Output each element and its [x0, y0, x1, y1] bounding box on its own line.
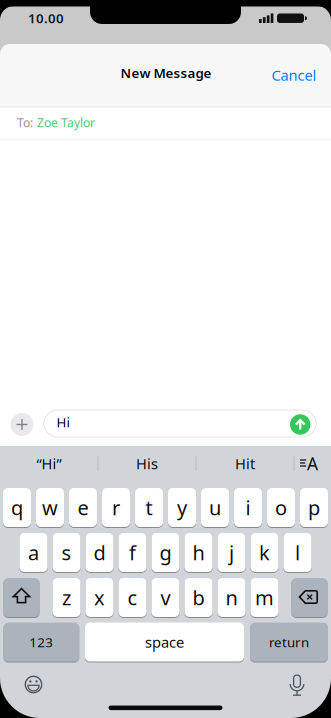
- button[interactable]: t: [135, 488, 163, 527]
- button[interactable]: [291, 578, 327, 617]
- staticText: A: [307, 452, 318, 475]
- button[interactable]: d: [85, 533, 113, 572]
- button[interactable]: [290, 414, 310, 435]
- staticText: v: [160, 584, 170, 611]
- staticText: space: [145, 632, 184, 652]
- staticText: x: [94, 584, 105, 611]
- button[interactable]: p: [300, 488, 328, 527]
- staticText: l: [295, 539, 300, 566]
- button[interactable]: [293, 445, 330, 483]
- button[interactable]: His: [99, 444, 195, 482]
- button[interactable]: h: [184, 533, 212, 572]
- staticText: Hi: [56, 413, 69, 431]
- staticText: i: [245, 494, 250, 521]
- staticText: b: [192, 584, 204, 611]
- button[interactable]: q: [3, 488, 31, 527]
- button[interactable]: a: [19, 533, 47, 572]
- button[interactable]: l: [283, 533, 311, 572]
- button[interactable]: g: [151, 533, 179, 572]
- button[interactable]: To:: [0, 107, 331, 138]
- button[interactable]: Hit: [197, 444, 293, 482]
- button[interactable]: i: [234, 488, 262, 527]
- staticText: m: [255, 584, 274, 611]
- staticText: To:: [17, 114, 33, 130]
- button[interactable]: 123: [3, 622, 79, 661]
- staticText: j: [229, 539, 234, 566]
- button[interactable]: z: [52, 578, 80, 617]
- staticText: o: [275, 494, 287, 521]
- staticText: n: [225, 584, 237, 611]
- staticText: d: [93, 539, 105, 566]
- staticText: k: [259, 539, 270, 566]
- button[interactable]: x: [85, 578, 113, 617]
- staticText: h: [192, 539, 204, 566]
- staticText: f: [129, 539, 136, 566]
- staticText: e: [77, 494, 88, 521]
- staticText: g: [159, 539, 171, 566]
- button[interactable]: k: [250, 533, 278, 572]
- staticText: c: [127, 584, 137, 611]
- button[interactable]: w: [36, 488, 64, 527]
- staticText: Cancel: [271, 65, 316, 85]
- button[interactable]: [3, 578, 39, 617]
- staticText: His: [136, 454, 158, 473]
- button[interactable]: Cancel: [271, 65, 316, 85]
- staticText: return: [269, 633, 309, 651]
- staticText: 123: [29, 633, 53, 651]
- button[interactable]: “Hi”: [1, 444, 97, 482]
- button[interactable]: [22, 673, 44, 695]
- button[interactable]: m: [250, 578, 278, 617]
- button[interactable]: return: [250, 622, 328, 661]
- staticText: z: [62, 584, 71, 611]
- staticText: w: [42, 494, 58, 521]
- button[interactable]: space: [85, 622, 244, 661]
- staticText: 10.00: [28, 9, 64, 27]
- staticText: a: [28, 539, 39, 566]
- staticText: s: [61, 539, 71, 566]
- button[interactable]: [286, 673, 308, 697]
- button[interactable]: o: [267, 488, 295, 527]
- button[interactable]: f: [118, 533, 146, 572]
- button[interactable]: u: [201, 488, 229, 527]
- staticText: Hit: [235, 454, 255, 473]
- button[interactable]: j: [217, 533, 245, 572]
- button[interactable]: n: [217, 578, 245, 617]
- staticText: r: [112, 494, 120, 521]
- staticText: p: [308, 494, 320, 521]
- button[interactable]: y: [168, 488, 196, 527]
- staticText: q: [11, 494, 23, 521]
- staticText: New Message: [120, 64, 211, 82]
- staticText: y: [177, 494, 187, 521]
- button[interactable]: c: [118, 578, 146, 617]
- staticText: t: [145, 494, 152, 521]
- button[interactable]: e: [69, 488, 97, 527]
- staticText: u: [209, 494, 221, 521]
- button[interactable]: b: [184, 578, 212, 617]
- staticText: “Hi”: [36, 454, 61, 473]
- staticText: Zoe Taylor: [37, 114, 95, 130]
- button[interactable]: [10, 413, 33, 436]
- button[interactable]: v: [151, 578, 179, 617]
- button[interactable]: s: [52, 533, 80, 572]
- button[interactable]: r: [102, 488, 130, 527]
